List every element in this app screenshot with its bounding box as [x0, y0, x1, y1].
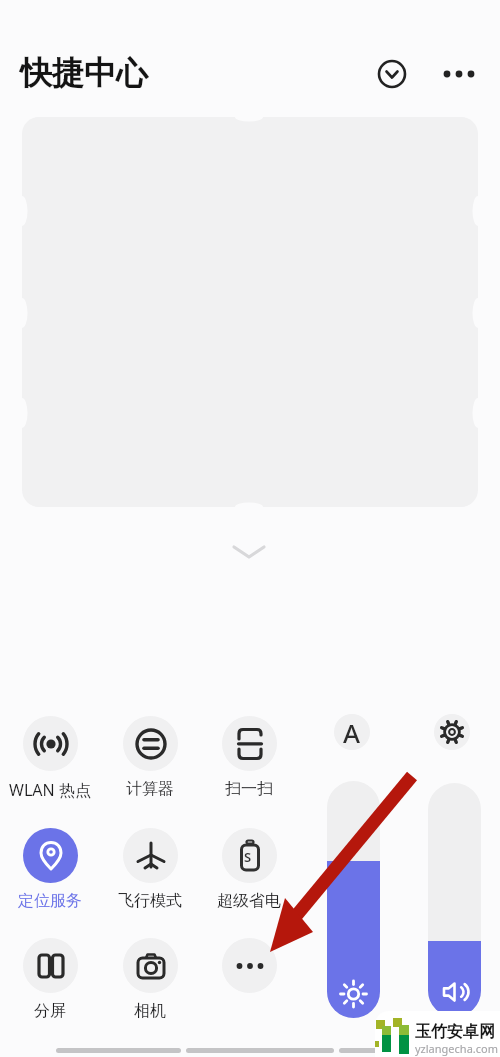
staticText: 玉竹安卓网: [415, 1022, 495, 1042]
button[interactable]: 相机: [105, 938, 195, 1022]
button[interactable]: [428, 783, 481, 1017]
staticText: 超级省电: [204, 891, 294, 911]
staticText: 相机: [105, 1001, 195, 1021]
staticText: 快捷中心: [20, 53, 148, 93]
button[interactable]: [437, 56, 481, 92]
button[interactable]: 飞行模式: [105, 828, 195, 912]
button[interactable]: [374, 56, 410, 92]
button[interactable]: WLAN 热点: [5, 716, 95, 800]
staticText: A: [343, 715, 361, 750]
button[interactable]: [434, 714, 470, 750]
staticText: WLAN 热点: [5, 779, 95, 800]
button[interactable]: 计算器: [105, 716, 195, 800]
staticText: 扫一扫: [204, 779, 294, 799]
button[interactable]: 超级省电: [204, 828, 294, 912]
staticText: 分屏: [5, 1001, 95, 1021]
staticText: 飞行模式: [105, 891, 195, 911]
button[interactable]: [204, 938, 294, 1022]
button[interactable]: 定位服务: [5, 828, 95, 912]
staticText: S: [244, 848, 252, 866]
button[interactable]: A: [334, 714, 370, 750]
button[interactable]: [327, 781, 380, 1018]
staticText: 定位服务: [5, 891, 95, 911]
staticText: yzlangecha.com: [415, 1041, 498, 1056]
button[interactable]: 分屏: [5, 938, 95, 1022]
button[interactable]: 扫一扫: [204, 716, 294, 800]
staticText: 计算器: [105, 779, 195, 799]
